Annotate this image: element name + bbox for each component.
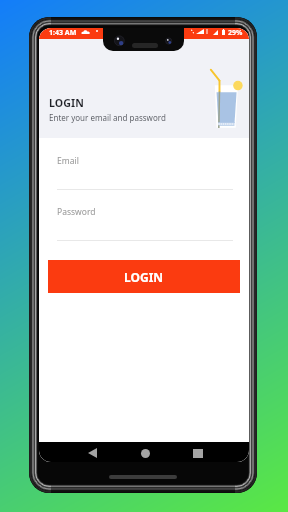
staticText: 1:43 AM [49, 28, 77, 38]
button[interactable]: Email [57, 155, 233, 190]
staticText: LOGIN [49, 96, 84, 110]
button[interactable]: Password [57, 206, 233, 241]
staticText: Password [57, 206, 96, 218]
button[interactable]: Back [72, 442, 112, 462]
button[interactable]: Recent apps [178, 442, 218, 462]
button[interactable]: LOGIN [48, 260, 240, 293]
button[interactable]: Home [125, 442, 165, 462]
staticText: LOGIN [124, 269, 164, 285]
staticText: 29% [228, 28, 243, 38]
staticText: Email [57, 155, 79, 167]
staticText: Enter your email and password [49, 112, 166, 123]
